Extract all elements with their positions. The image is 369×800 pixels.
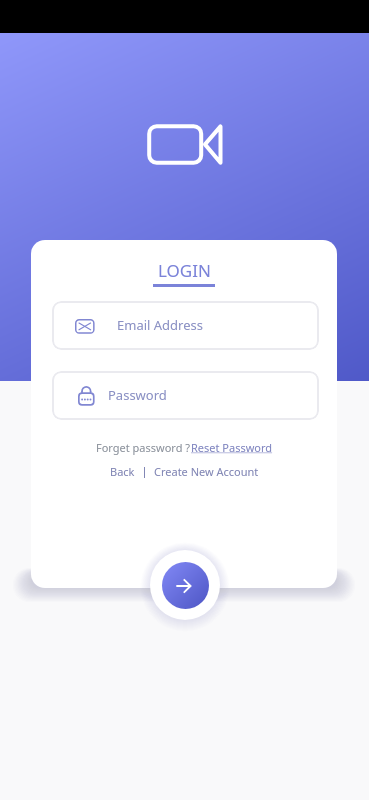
- staticText: Password: [108, 386, 167, 404]
- staticText: Forget password ?: [96, 440, 191, 455]
- button[interactable]: Email Address: [52, 301, 319, 350]
- button[interactable]: Back: [110, 464, 135, 479]
- other: Video app logo: [144, 121, 226, 168]
- staticText: Email Address: [117, 316, 203, 334]
- button[interactable]: Reset Password: [191, 440, 273, 455]
- button[interactable]: Sign in: [162, 562, 209, 609]
- button[interactable]: Create New Account: [154, 464, 259, 479]
- button[interactable]: Password: [52, 371, 319, 420]
- button[interactable]: LOGIN: [153, 259, 215, 287]
- staticText: LOGIN: [158, 259, 211, 282]
